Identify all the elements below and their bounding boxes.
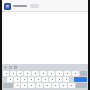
button[interactable]: Voice input: [4, 66, 7, 69]
button[interactable]: [48, 71, 55, 76]
button[interactable]: Clipboard: [14, 66, 17, 69]
button[interactable]: [28, 83, 35, 88]
button[interactable]: [28, 77, 34, 82]
button[interactable]: [60, 83, 67, 88]
button[interactable]: [56, 71, 63, 76]
button[interactable]: [42, 77, 48, 82]
button[interactable]: App icon: [4, 3, 11, 10]
button[interactable]: [49, 77, 55, 82]
button[interactable]: [24, 71, 31, 76]
button[interactable]: [56, 77, 62, 82]
button[interactable]: [35, 77, 41, 82]
button[interactable]: [14, 83, 20, 88]
button[interactable]: [36, 83, 43, 88]
button[interactable]: [44, 83, 51, 88]
button[interactable]: [68, 83, 75, 88]
button[interactable]: [13, 5, 27, 7]
button[interactable]: Enter: [74, 77, 87, 82]
button[interactable]: Emoji: [9, 66, 12, 69]
button[interactable]: [64, 71, 71, 76]
button[interactable]: [17, 71, 23, 76]
button[interactable]: [14, 77, 20, 82]
button[interactable]: [72, 71, 79, 76]
button[interactable]: [63, 77, 69, 82]
button[interactable]: [7, 77, 13, 82]
button[interactable]: Action: [30, 4, 39, 8]
button[interactable]: [40, 71, 47, 76]
button[interactable]: [32, 71, 39, 76]
button[interactable]: [21, 77, 27, 82]
button[interactable]: [10, 71, 16, 76]
button[interactable]: [21, 83, 27, 88]
button[interactable]: [52, 83, 59, 88]
button[interactable]: [3, 71, 9, 76]
